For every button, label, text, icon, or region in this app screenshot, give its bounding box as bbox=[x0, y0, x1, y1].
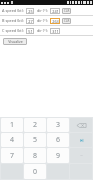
staticText: 4 bbox=[10, 135, 15, 145]
staticText: 2 bbox=[33, 120, 38, 130]
button[interactable]: 241 bbox=[50, 8, 60, 14]
staticText: 0 bbox=[33, 167, 38, 177]
button[interactable]: CLR bbox=[62, 8, 71, 14]
staticText: 1 bbox=[10, 120, 15, 130]
button[interactable]: CLR bbox=[62, 18, 71, 24]
button[interactable]: 25 bbox=[26, 8, 34, 14]
staticText: dir (°): bbox=[37, 28, 48, 33]
button[interactable]: 0 bbox=[24, 164, 46, 179]
staticText: 25 bbox=[28, 9, 33, 14]
staticText: C speed (kt): bbox=[2, 28, 24, 33]
button[interactable]: Next field bbox=[70, 133, 92, 147]
staticText: 8 bbox=[33, 151, 38, 161]
button[interactable]: 263 bbox=[50, 18, 60, 24]
button[interactable]: 2 bbox=[24, 118, 46, 132]
staticText: 263 bbox=[52, 19, 59, 24]
button[interactable]: 51 bbox=[26, 28, 34, 34]
button[interactable]: Visualize bbox=[3, 38, 27, 45]
button[interactable]: 311 bbox=[50, 28, 60, 34]
button[interactable]: 1 bbox=[1, 118, 23, 132]
staticText: 6 bbox=[56, 135, 61, 145]
button[interactable]: 8 bbox=[24, 148, 46, 163]
staticText: 51 bbox=[28, 29, 33, 34]
staticText: CLR bbox=[64, 9, 70, 13]
staticText: dir (°): bbox=[37, 8, 48, 13]
button[interactable]: 5 bbox=[24, 133, 46, 147]
staticText: dir (°): bbox=[37, 18, 48, 23]
staticText: 311 bbox=[52, 29, 59, 34]
staticText: Visualize bbox=[8, 39, 23, 44]
staticText: A speed (kt): bbox=[2, 8, 24, 13]
staticText: 3 bbox=[56, 120, 61, 130]
staticText: 7 bbox=[10, 151, 15, 161]
button[interactable]: 9 bbox=[47, 148, 69, 163]
staticText: 9 bbox=[56, 151, 61, 161]
button[interactable]: 27 bbox=[26, 18, 34, 24]
button[interactable]: Backspace bbox=[70, 118, 92, 132]
staticText: CLR bbox=[64, 19, 70, 23]
button[interactable]: 6 bbox=[47, 133, 69, 147]
staticText: 5 bbox=[33, 135, 38, 145]
button[interactable]: 3 bbox=[47, 118, 69, 132]
staticText: B speed (kt): bbox=[2, 18, 24, 23]
button[interactable]: 4 bbox=[1, 133, 23, 147]
staticText: 27 bbox=[28, 19, 33, 24]
staticText: 241 bbox=[52, 9, 59, 14]
button[interactable]: 7 bbox=[1, 148, 23, 163]
